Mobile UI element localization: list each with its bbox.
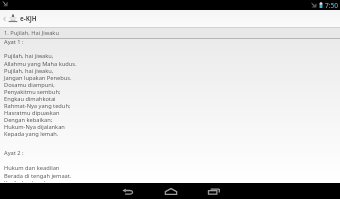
staticText: Ayat 2 : bbox=[4, 149, 24, 157]
button[interactable]: Back bbox=[106, 183, 149, 199]
staticText: Pujilah, hai jiwaku, Allahmu yang Maha k… bbox=[4, 52, 77, 137]
button[interactable]: Recent apps bbox=[192, 183, 235, 199]
other: Mobile data bbox=[2, 0, 8, 10]
staticText: 7:50 bbox=[325, 1, 338, 10]
button[interactable]: 1. Pujilah, Hai Jiwaku bbox=[0, 28, 340, 38]
staticText: Ayat 1 : bbox=[4, 38, 24, 46]
staticText: Hukum dan keadilan Berada di tengah jema… bbox=[4, 164, 72, 182]
staticText: 1. Pujilah, Hai Jiwaku bbox=[4, 29, 59, 37]
button[interactable]: Navigate up bbox=[0, 10, 8, 27]
button[interactable]: Home bbox=[149, 183, 192, 199]
staticText: e-KJH bbox=[20, 14, 37, 22]
